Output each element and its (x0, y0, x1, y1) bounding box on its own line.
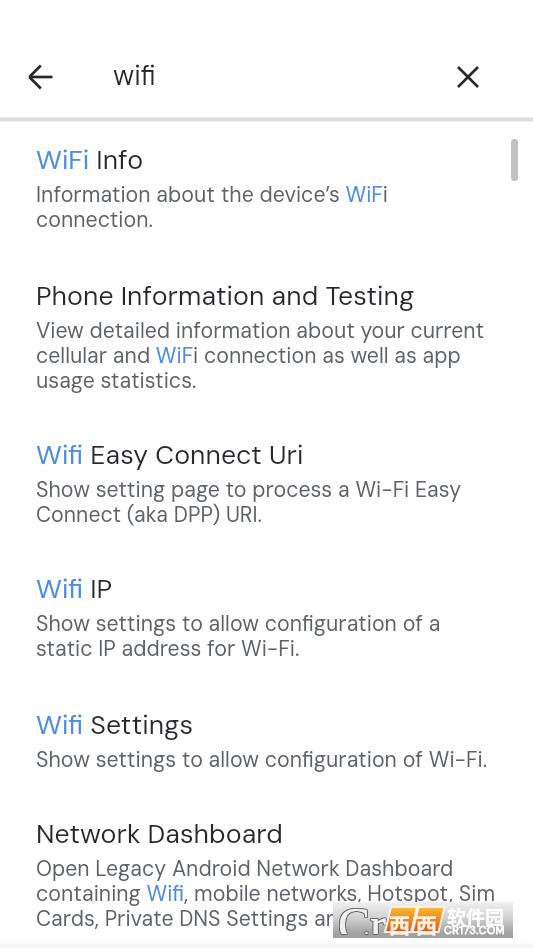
button[interactable]: Wifi Settings (36, 710, 497, 773)
button[interactable]: Wifi IP (36, 574, 497, 662)
staticText: Wifi Settings (36, 710, 194, 741)
staticText: CR173.COM (444, 923, 505, 937)
staticText: Open Legacy Android Network Dashboard co… (36, 857, 497, 932)
staticText: Cr (337, 897, 385, 933)
staticText: View detailed information about your cur… (36, 319, 497, 394)
button[interactable]: Clear search (441, 50, 495, 104)
staticText: Network Dashboard (36, 819, 283, 850)
staticText: 软件园 (447, 903, 505, 931)
button[interactable]: Back (14, 50, 68, 104)
staticText: Show settings to allow configuration of … (36, 612, 497, 662)
button[interactable]: Network Dashboard (36, 819, 497, 932)
staticText: Cr (338, 898, 386, 934)
staticText: 西 (416, 909, 437, 939)
staticText: Cr (338, 899, 386, 935)
staticText: Wifi Easy Connect Uri (36, 440, 304, 471)
button[interactable]: WiFi Info (36, 145, 497, 233)
staticText: Cr (339, 897, 387, 933)
staticText: Cr (339, 898, 387, 934)
staticText: Cr (338, 897, 386, 933)
staticText: Cr (339, 899, 387, 935)
staticText: 西 (389, 909, 410, 939)
button[interactable]: Phone Information and Testing (36, 281, 497, 394)
staticText: WiFi Info (36, 145, 144, 176)
button[interactable]: Wifi Easy Connect Uri (36, 440, 497, 528)
staticText: Cr (337, 898, 385, 934)
staticText: Show settings to allow configuration of … (36, 748, 488, 773)
staticText: Cr (337, 899, 385, 935)
staticText: Show setting page to process a Wi-Fi Eas… (36, 478, 497, 528)
staticText: Information about the device’s WiFi conn… (36, 183, 497, 233)
staticText: Wifi IP (36, 574, 113, 605)
staticText: Phone Information and Testing (36, 281, 415, 312)
staticText: wifi (113, 58, 156, 93)
